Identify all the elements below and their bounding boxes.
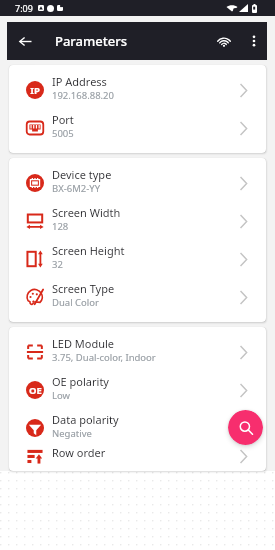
button[interactable]: Screen Width — [9, 202, 266, 240]
staticText: Device type — [52, 167, 112, 182]
staticText: BX-6M2-YY — [52, 182, 101, 195]
staticText: 5005 — [52, 127, 74, 140]
button[interactable]: LED Module — [9, 333, 266, 371]
staticText: 128 — [52, 220, 69, 233]
staticText: Data polarity — [52, 412, 119, 427]
staticText: Parameters — [55, 32, 128, 50]
button[interactable]: IP — [9, 71, 266, 109]
staticText: 7:09 — [15, 2, 33, 14]
button[interactable]: Row order — [9, 447, 266, 465]
button[interactable]: Screen Type — [9, 278, 266, 316]
staticText: OE — [29, 384, 42, 397]
staticText: 32 — [52, 258, 63, 271]
staticText: Screen Type — [52, 281, 115, 296]
button[interactable]: More options — [241, 22, 267, 60]
button[interactable]: Wi-Fi — [206, 22, 241, 60]
button[interactable]: Port — [9, 109, 266, 147]
staticText: Dual Color — [52, 296, 99, 309]
staticText: 3.75, Dual-color, Indoor — [52, 351, 156, 364]
staticText: IP — [30, 84, 40, 97]
staticText: Low — [52, 389, 71, 402]
button[interactable]: Back — [7, 22, 44, 60]
staticText: LED Module — [52, 336, 115, 351]
button[interactable]: Data polarity — [9, 409, 266, 447]
staticText: Row order — [52, 445, 106, 460]
staticText: Screen Height — [52, 243, 125, 258]
button[interactable]: Device type — [9, 164, 266, 202]
button[interactable]: Search — [228, 410, 263, 445]
staticText: IP Address — [52, 74, 107, 89]
button[interactable]: Screen Height — [9, 240, 266, 278]
staticText: Negative — [52, 427, 92, 440]
staticText: OE polarity — [52, 374, 109, 389]
staticText: 192.168.88.20 — [52, 89, 114, 102]
staticText: Screen Width — [52, 205, 121, 220]
button[interactable]: OE — [9, 371, 266, 409]
staticText: Port — [52, 112, 74, 127]
